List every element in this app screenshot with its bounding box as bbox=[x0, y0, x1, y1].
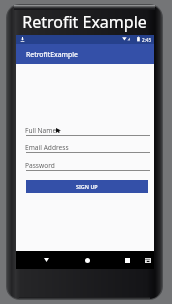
staticText: 2:45 bbox=[142, 37, 152, 43]
button[interactable]: Full Name bbox=[26, 127, 150, 136]
staticText: Full Name bbox=[25, 126, 57, 135]
button[interactable]: Email Address bbox=[26, 144, 150, 153]
staticText: Email Address bbox=[25, 143, 69, 152]
button[interactable]: Keyboard bbox=[141, 253, 155, 267]
staticText: Password bbox=[25, 161, 55, 170]
button[interactable]: Back bbox=[39, 253, 53, 267]
button[interactable]: RetrofitExample bbox=[16, 44, 154, 64]
button[interactable]: Home bbox=[80, 253, 94, 267]
staticText: SIGN UP bbox=[76, 183, 98, 190]
button[interactable]: Password bbox=[26, 162, 150, 171]
button[interactable]: Recent apps bbox=[120, 253, 134, 267]
button[interactable]: SIGN UP bbox=[26, 180, 148, 193]
staticText: Retrofit Example bbox=[7, 11, 162, 33]
staticText: RetrofitExample bbox=[26, 50, 78, 59]
